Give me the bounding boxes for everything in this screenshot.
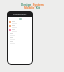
button[interactable] <box>7 32 33 36</box>
staticText: Kit <box>35 6 40 10</box>
staticText: Design <box>21 3 32 7</box>
staticText: Components <box>13 13 27 16</box>
button[interactable] <box>7 24 33 28</box>
button[interactable] <box>7 28 33 32</box>
staticText: System <box>32 3 44 7</box>
button[interactable] <box>7 36 33 40</box>
button[interactable]: Components <box>7 11 33 17</box>
staticText: Mobile <box>24 6 35 10</box>
button[interactable]: Filter <box>19 18 22 20</box>
button[interactable] <box>7 40 33 44</box>
button[interactable] <box>7 20 33 24</box>
